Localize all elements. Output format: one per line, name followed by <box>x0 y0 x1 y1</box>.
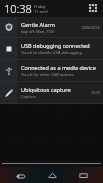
button[interactable]: Back <box>9 167 31 183</box>
staticText: Connected as a media device <box>21 64 96 71</box>
staticText: Capture <box>21 94 36 99</box>
button[interactable]: Drag handle <box>0 160 103 167</box>
staticText: Friday <box>34 4 46 9</box>
button[interactable]: Gentle Alarm <box>0 17 103 37</box>
staticText: 10:35 <box>91 90 100 95</box>
button[interactable]: Recent apps <box>72 167 94 183</box>
staticText: Ubiquitous capture <box>21 86 71 93</box>
staticText: 11 avril <box>34 9 48 14</box>
staticText: Gentle Alarm <box>21 21 55 28</box>
staticText: USB debugging connected <box>21 42 90 49</box>
button[interactable]: USB debugging connected <box>0 38 103 59</box>
staticText: 10:38 <box>4 1 32 16</box>
button[interactable]: Connected as a media device <box>0 60 103 81</box>
button[interactable]: Home <box>41 167 63 183</box>
staticText: Touch for other USB options <box>21 72 74 77</box>
staticText: 14/06/2014 <box>81 25 100 30</box>
button[interactable]: Quick settings <box>87 2 100 15</box>
staticText: Touch to disable USB debugging <box>21 50 82 55</box>
button[interactable]: Ubiquitous capture <box>0 82 103 103</box>
staticText: day off: Mon, TOS <box>21 29 55 34</box>
